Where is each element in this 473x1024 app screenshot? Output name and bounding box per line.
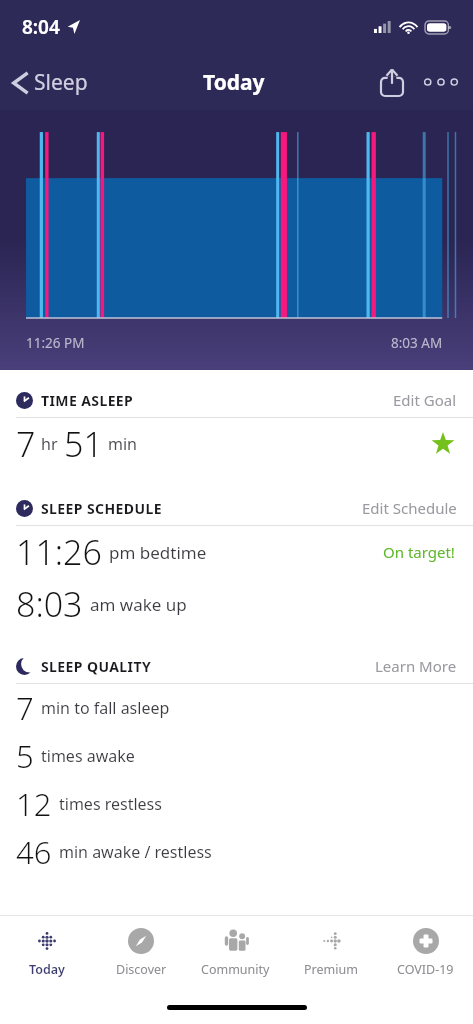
staticText: times restless (59, 793, 162, 815)
staticText: times awake (41, 745, 135, 767)
staticText: Discover (116, 961, 167, 978)
button[interactable]: Sleep (0, 62, 100, 103)
staticText: COVID-19 (397, 961, 454, 978)
button[interactable]: 11:26 (0, 526, 473, 578)
staticText: On target! (383, 542, 455, 562)
button[interactable]: Discover (94, 916, 188, 990)
button[interactable]: Premium (283, 916, 378, 990)
staticText: 5 (16, 735, 34, 777)
staticText: Learn More (375, 656, 457, 676)
button[interactable]: 7 (0, 684, 473, 732)
button[interactable]: More options (415, 56, 467, 108)
staticText: min to fall asleep (41, 697, 170, 719)
button[interactable]: Share (369, 59, 415, 105)
staticText: 11:26 PM (26, 334, 85, 352)
staticText: TIME ASLEEP (41, 391, 134, 410)
staticText: am wake up (90, 593, 187, 616)
button[interactable]: 46 (0, 828, 473, 876)
staticText: pm bedtime (109, 541, 207, 564)
staticText: 7 (16, 421, 36, 467)
staticText: 11:26 (16, 529, 102, 575)
staticText: hr (41, 433, 58, 455)
staticText: min (108, 433, 137, 455)
staticText: 8:03 AM (391, 334, 443, 352)
staticText: Community (201, 961, 270, 978)
staticText: 51 (64, 421, 103, 467)
button[interactable]: SLEEP QUALITY (0, 650, 473, 683)
button[interactable]: 8:03 (0, 578, 473, 630)
staticText: 8:03 (16, 581, 83, 627)
button[interactable]: SLEEP SCHEDULE (0, 492, 473, 525)
button[interactable]: TIME ASLEEP (0, 384, 473, 417)
staticText: Premium (304, 961, 358, 978)
staticText: 46 (16, 831, 52, 873)
staticText: SLEEP SCHEDULE (41, 499, 162, 518)
staticText: SLEEP QUALITY (41, 657, 152, 676)
button[interactable]: 12 (0, 780, 473, 828)
staticText: 7 (16, 687, 34, 729)
button[interactable]: Today (0, 916, 94, 990)
staticText: Sleep (34, 68, 88, 97)
button[interactable]: 7 (0, 418, 473, 470)
staticText: min awake / restless (59, 841, 212, 863)
staticText: Edit Goal (393, 390, 457, 410)
button[interactable]: COVID-19 (378, 916, 473, 990)
staticText: Edit Schedule (362, 498, 457, 518)
button[interactable]: 5 (0, 732, 473, 780)
staticText: Today (203, 68, 265, 97)
staticText: 8:04 (22, 14, 60, 40)
button[interactable]: Community (188, 916, 283, 990)
staticText: 12 (16, 783, 52, 825)
staticText: Today (29, 961, 65, 978)
